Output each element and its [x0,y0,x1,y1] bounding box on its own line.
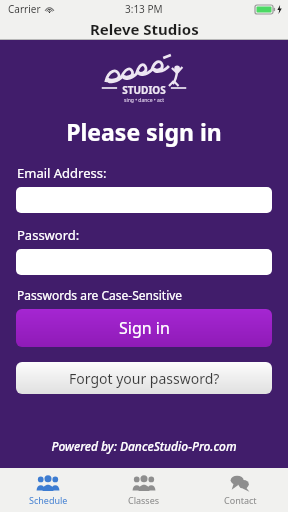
staticText: Password: [17,226,80,244]
staticText: Carrier [8,2,41,16]
staticText: Email Address: [17,164,107,182]
staticText: Please sign in [0,116,288,147]
button[interactable]: Contact [192,468,288,512]
staticText: sing • dance • act [96,97,192,104]
staticText: Contact [224,494,257,506]
staticText: Releve Studios [90,19,199,39]
staticText: Powered by: DanceStudio-Pro.com [0,438,288,454]
staticText: Forgot your password? [69,369,220,388]
staticText: STUDIOS [96,83,192,97]
button[interactable]: Forgot your password? [16,362,272,394]
button[interactable]: Sign in [16,309,272,347]
button[interactable] [16,187,272,213]
button[interactable] [16,249,272,275]
staticText: Sign in [119,317,170,339]
staticText: Schedule [29,494,68,506]
button[interactable]: Classes [96,468,192,512]
button[interactable]: Schedule [0,468,96,512]
staticText: Passwords are Case-Sensitive [17,287,183,303]
staticText: Classes [128,494,160,506]
staticText: 3:13 PM [125,2,163,16]
